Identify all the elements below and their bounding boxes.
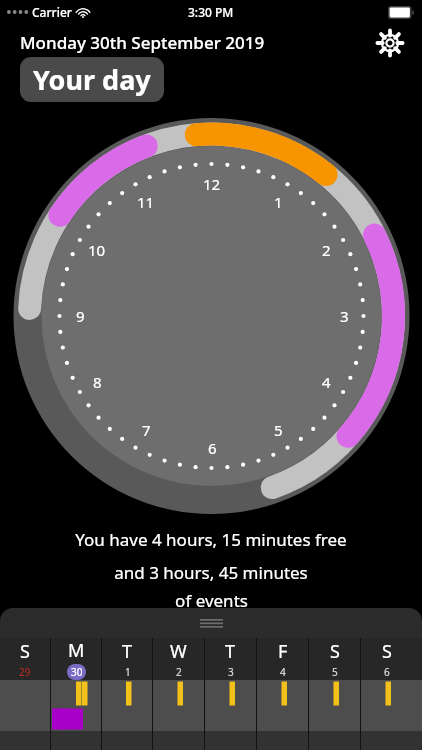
staticText: 1: [125, 665, 131, 679]
button[interactable]: W: [153, 638, 204, 680]
staticText: 3:30 PM: [188, 4, 234, 20]
button[interactable]: [153, 680, 204, 707]
staticText: T: [122, 639, 133, 664]
staticText: M: [68, 638, 85, 663]
staticText: You have 4 hours, 15 minutes free: [75, 528, 347, 551]
button[interactable]: [51, 680, 101, 707]
staticText: 3: [340, 306, 349, 326]
button[interactable]: [205, 680, 256, 707]
staticText: 4: [280, 665, 286, 679]
staticText: 8: [93, 372, 102, 392]
staticText: 3: [228, 665, 234, 679]
staticText: 2: [176, 665, 182, 679]
staticText: 29: [19, 665, 31, 679]
staticText: T: [225, 639, 236, 664]
staticText: 11: [137, 192, 155, 212]
staticText: Monday 30th September 2019: [20, 31, 265, 54]
staticText: 9: [76, 306, 85, 326]
button[interactable]: [361, 680, 412, 707]
button[interactable]: T: [205, 638, 256, 680]
staticText: and 3 hours, 45 minutes: [114, 561, 308, 584]
button[interactable]: 1: [0, 0, 422, 750]
button[interactable]: M: [51, 638, 101, 680]
staticText: S: [330, 639, 340, 664]
button[interactable]: S: [309, 638, 360, 680]
button[interactable]: T: [102, 638, 152, 680]
staticText: 1: [274, 192, 283, 212]
staticText: W: [170, 639, 187, 664]
staticText: 4: [322, 372, 331, 392]
staticText: Your day: [33, 61, 151, 98]
button[interactable]: S: [0, 638, 50, 680]
button[interactable]: F: [257, 638, 308, 680]
button[interactable]: [257, 680, 308, 707]
button[interactable]: S: [361, 638, 412, 680]
staticText: Carrier: [32, 4, 72, 20]
staticText: S: [20, 639, 30, 664]
staticText: 5: [332, 665, 338, 679]
staticText: F: [278, 639, 288, 664]
staticText: 7: [142, 420, 151, 440]
staticText: 30: [71, 665, 83, 679]
button[interactable]: [0, 608, 422, 638]
staticText: 12: [203, 174, 221, 194]
staticText: S: [382, 639, 392, 664]
staticText: 6: [384, 665, 390, 679]
button[interactable]: Settings: [375, 28, 405, 58]
button[interactable]: [102, 680, 152, 707]
staticText: 2: [322, 240, 331, 260]
button[interactable]: [51, 707, 101, 731]
staticText: 5: [274, 420, 283, 440]
staticText: of events: [175, 589, 248, 612]
button[interactable]: [309, 680, 360, 707]
staticText: 10: [88, 240, 106, 260]
button[interactable]: Your day: [20, 57, 164, 102]
staticText: 6: [208, 438, 217, 458]
